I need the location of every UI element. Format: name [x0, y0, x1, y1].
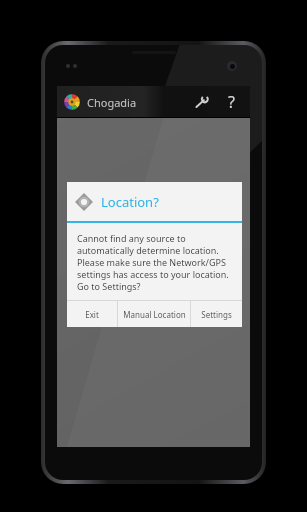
staticText: Settings: [201, 309, 232, 320]
button[interactable]: Settings: [191, 301, 242, 327]
button[interactable]: Settings: [186, 86, 216, 118]
button[interactable]: Exit: [67, 301, 117, 327]
staticText: Exit: [85, 309, 99, 320]
staticText: ?: [228, 91, 235, 113]
button[interactable]: Help: [216, 86, 246, 118]
staticText: Chogadia: [87, 95, 137, 110]
button[interactable]: Manual Location: [118, 301, 190, 327]
staticText: Cannot find any source to automatically …: [77, 232, 229, 292]
staticText: Location?: [101, 193, 159, 211]
staticText: Manual Location: [123, 309, 186, 320]
